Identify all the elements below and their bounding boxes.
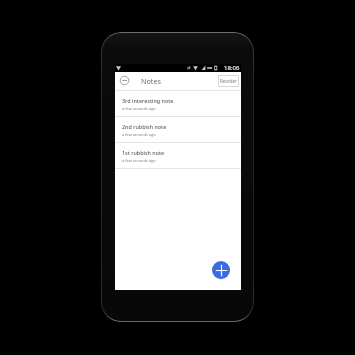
staticText: 1st rubbish note [122, 149, 165, 156]
staticText: 2nd rubbish note [122, 123, 167, 130]
staticText: 18:06 [224, 64, 240, 72]
staticText: a few seconds ago [122, 106, 156, 111]
button[interactable]: Reorder [218, 75, 239, 87]
staticText: a few seconds ago [122, 132, 156, 137]
button[interactable]: Add note [212, 261, 230, 279]
button[interactable]: 2nd rubbish note [115, 117, 241, 143]
button[interactable]: 3rd interesting note [115, 91, 241, 117]
staticText: a few seconds ago [122, 158, 156, 163]
staticText: Notes [141, 76, 161, 86]
staticText: Reorder [220, 78, 237, 84]
button[interactable]: 1st rubbish note [115, 143, 241, 169]
button[interactable]: Open navigation drawer [119, 75, 130, 86]
staticText: 3rd interesting note [122, 97, 174, 104]
